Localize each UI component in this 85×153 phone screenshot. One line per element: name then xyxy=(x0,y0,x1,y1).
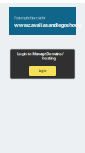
staticText: hosting xyxy=(42,55,56,61)
staticText: www.cavaliasandiegoshow.c xyxy=(14,21,82,28)
button[interactable]: Login xyxy=(29,66,56,76)
staticText: Featuring the future site for xyxy=(14,15,46,20)
staticText: Login to Manage Domains / xyxy=(17,51,64,56)
staticText: Login xyxy=(38,69,46,73)
